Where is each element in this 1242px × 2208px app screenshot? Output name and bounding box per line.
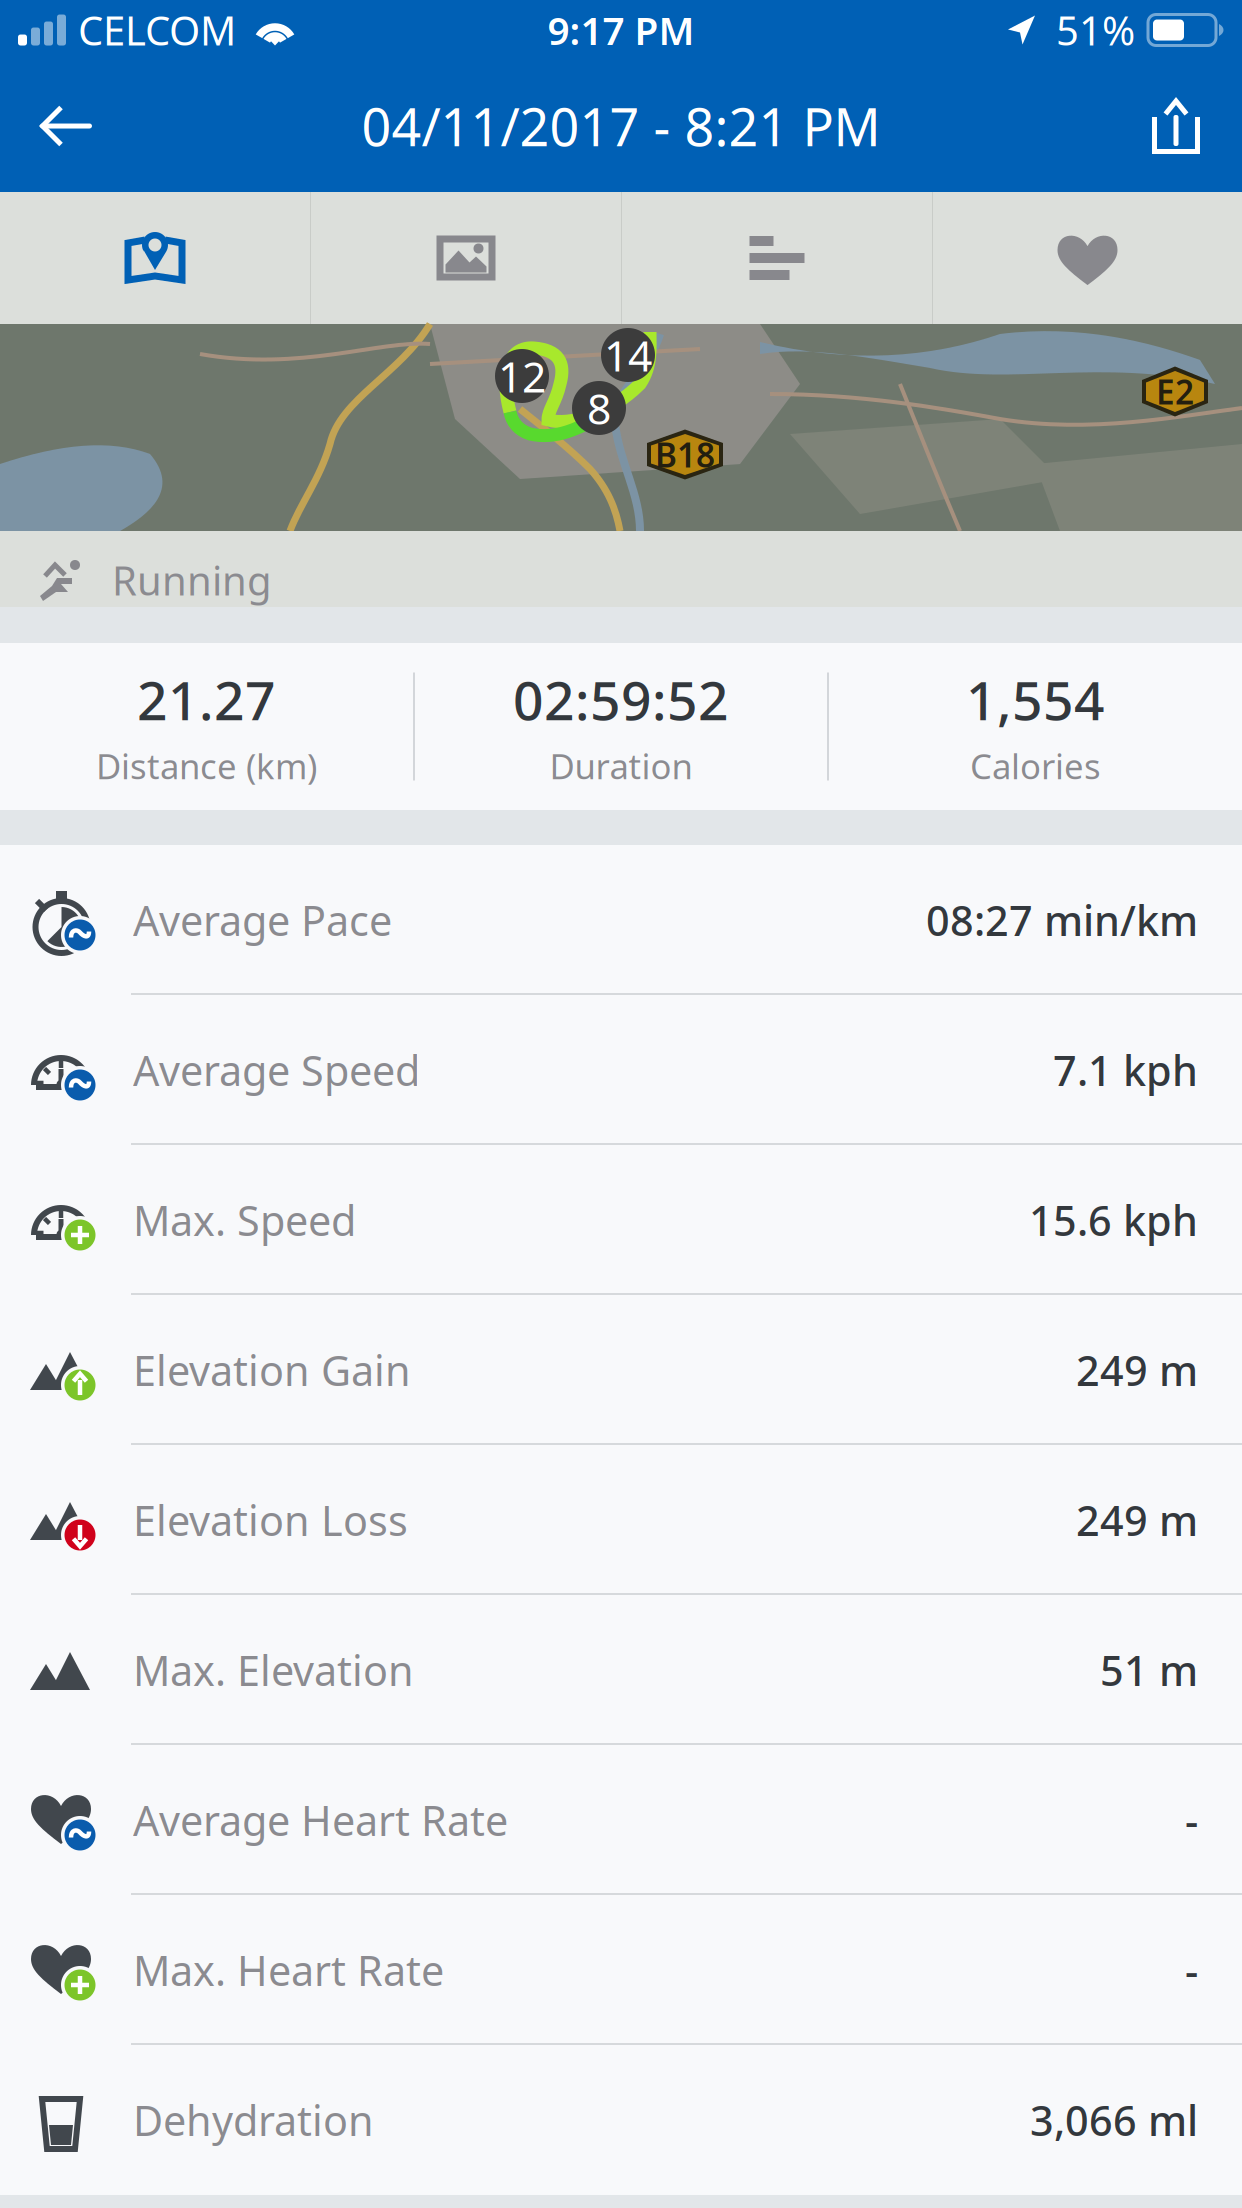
button[interactable]: Max. Elevation [0,1595,1242,1745]
staticText: 21.27 [137,664,276,735]
staticText: 15.6 kph [1029,1193,1198,1247]
staticText: E2 [1156,369,1194,414]
button[interactable]: Dehydration [0,2045,1242,2195]
staticText: 04/11/2017 - 8:21 PM [361,91,880,161]
button[interactable]: Heart rate [933,192,1242,324]
staticText: Duration [549,743,692,789]
staticText: B18 [655,432,715,477]
staticText: Elevation Gain [133,1343,411,1397]
staticText: Running [112,553,272,606]
button[interactable]: Average Pace [0,845,1242,995]
button[interactable]: Average Speed [0,995,1242,1145]
staticText: - [1185,1943,1198,1997]
button[interactable]: Max. Heart Rate [0,1895,1242,2045]
button[interactable]: Photos [311,192,621,324]
staticText: Calories [970,743,1101,789]
staticText: CELCOM [78,3,236,56]
staticText: Average Speed [133,1043,420,1097]
button[interactable]: Share [1116,71,1236,181]
staticText: Distance (km) [96,743,317,789]
staticText: 51 m [1100,1643,1198,1697]
staticText: 14 [604,327,652,383]
staticText: Max. Heart Rate [133,1943,444,1997]
staticText: - [1185,1793,1198,1847]
staticText: 9:17 PM [547,4,694,56]
staticText: Max. Elevation [133,1643,414,1697]
staticText: 3,066 ml [1030,2093,1198,2147]
staticText: Average Heart Rate [133,1793,508,1847]
staticText: Dehydration [133,2093,374,2147]
staticText: Average Pace [133,893,392,947]
staticText: 8 [587,380,611,436]
staticText: Max. Speed [133,1193,356,1247]
staticText: 51% [1056,3,1135,56]
staticText: 7.1 kph [1053,1043,1198,1097]
button[interactable]: Elevation Loss [0,1445,1242,1595]
button[interactable]: Back [6,71,126,181]
staticText: 08:27 min/km [926,893,1198,947]
staticText: 02:59:52 [513,664,729,735]
staticText: 12 [498,348,546,404]
staticText: Elevation Loss [133,1493,408,1547]
staticText: 249 m [1076,1343,1198,1397]
button[interactable]: Max. Speed [0,1145,1242,1295]
button[interactable]: Splits [622,192,932,324]
button[interactable]: Average Heart Rate [0,1745,1242,1895]
staticText: 1,554 [966,664,1105,735]
staticText: 249 m [1076,1493,1198,1547]
button[interactable]: Map [0,192,310,324]
button[interactable]: Elevation Gain [0,1295,1242,1445]
